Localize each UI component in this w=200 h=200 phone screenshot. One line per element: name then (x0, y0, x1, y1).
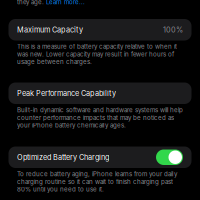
staticText: charging routine so it can wait to finis… (17, 178, 173, 185)
staticText: counter performance impacts that may be … (17, 114, 174, 121)
staticText: Optimized Battery Charging (17, 153, 109, 162)
staticText: usage between charges. (17, 58, 92, 65)
staticText: 100% (163, 25, 183, 34)
staticText: Peak Performance Capability (17, 89, 116, 98)
staticText: Built-in dynamic software and hardware s… (17, 106, 183, 114)
staticText: 80% until you need to use it. (17, 186, 104, 193)
staticText: your iPhone battery chemically ages. (17, 122, 126, 129)
staticText: To reduce battery aging, iPhone learns f… (17, 170, 177, 178)
staticText: was new. Lower capacity may result in fe… (17, 51, 174, 58)
staticText: This is a measure of battery capacity re… (17, 43, 177, 50)
button[interactable]: Optimized Battery Charging (0, 146, 200, 168)
button[interactable]: Peak Performance Capability (0, 82, 200, 104)
button[interactable]: Maximum Capacity (0, 19, 200, 40)
staticText: they age. (17, 0, 46, 6)
staticText: Learn more... (46, 0, 85, 6)
button[interactable]: they age. (17, 0, 85, 6)
staticText: Maximum Capacity (17, 25, 83, 34)
